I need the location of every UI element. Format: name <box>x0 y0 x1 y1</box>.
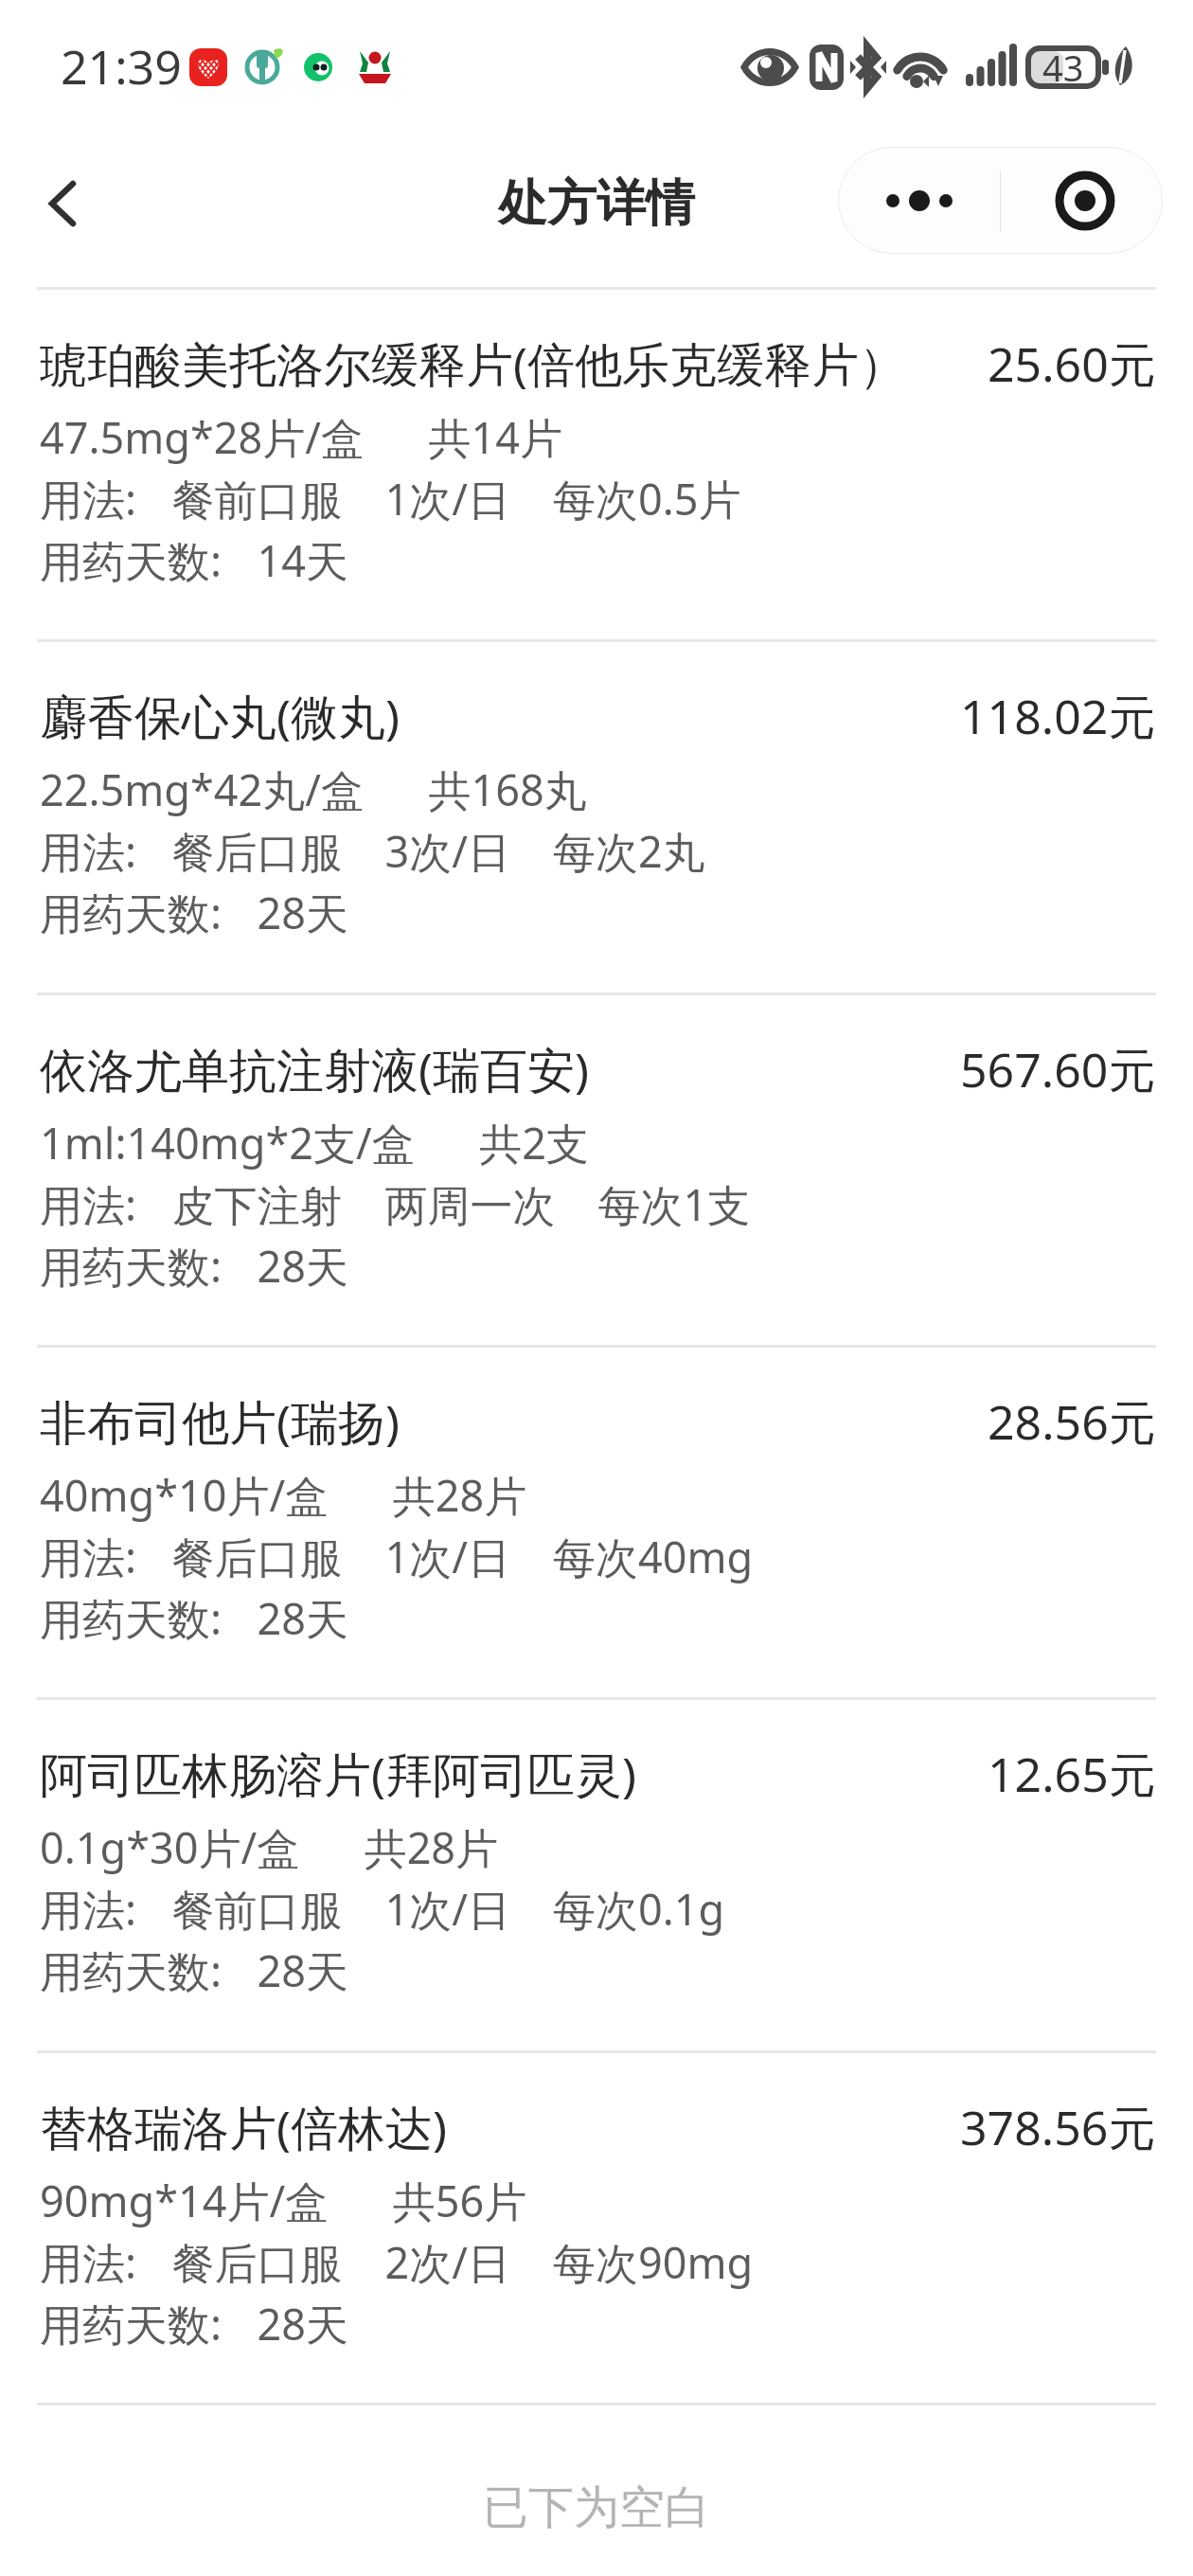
staticText: 用法: 皮下注射 两周一次 每次1支 <box>40 1175 751 1233</box>
staticText: 用药天数: 28天 <box>40 1237 349 1295</box>
staticText: 用药天数: 14天 <box>40 531 349 589</box>
staticText: 40mg*10片/盒 共28片 <box>40 1466 527 1524</box>
staticText: 麝香保心丸(微丸) <box>40 684 400 748</box>
staticText: 用法: 餐前口服 1次/日 每次0.1g <box>40 1880 725 1938</box>
staticText: 90mg*14片/盒 共56片 <box>40 2172 527 2229</box>
button[interactable]: Close <box>1001 147 1163 254</box>
staticText: 已下为空白 <box>483 2479 710 2536</box>
staticText: 用法: 餐后口服 3次/日 每次2丸 <box>40 822 705 880</box>
staticText: 25.60元 <box>988 331 1156 396</box>
staticText: 阿司匹林肠溶片(拜阿司匹灵) <box>40 1742 636 1806</box>
staticText: 处方详情 <box>498 172 695 235</box>
button[interactable]: 非布司他片(瑞扬) <box>0 1348 1193 1697</box>
staticText: 22.5mg*42丸/盒 共168丸 <box>40 760 587 818</box>
staticText: 用药天数: 28天 <box>40 2295 349 2352</box>
staticText: 用药天数: 28天 <box>40 1941 349 1999</box>
staticText: 0.1g*30片/盒 共28片 <box>40 1818 499 1876</box>
staticText: 非布司他片(瑞扬) <box>40 1389 400 1454</box>
staticText: 依洛尤单抗注射液(瑞百安) <box>40 1037 589 1101</box>
button[interactable]: 琥珀酸美托洛尔缓释片(倍他乐克缓释片） <box>0 290 1193 639</box>
staticText: 118.02元 <box>960 684 1156 748</box>
button[interactable]: 替格瑞洛片(倍林达) <box>0 2053 1193 2403</box>
button[interactable]: 阿司匹林肠溶片(拜阿司匹灵) <box>0 1700 1193 2049</box>
staticText: 12.65元 <box>988 1742 1156 1806</box>
button[interactable]: 麝香保心丸(微丸) <box>0 642 1193 992</box>
staticText: 378.56元 <box>960 2095 1156 2159</box>
staticText: 21:39 <box>61 34 182 98</box>
staticText: 1ml:140mg*2支/盒 共2支 <box>40 1114 589 1172</box>
staticText: 用法: 餐后口服 2次/日 每次90mg <box>40 2233 754 2291</box>
staticText: 用药天数: 28天 <box>40 1589 349 1647</box>
staticText: 琥珀酸美托洛尔缓释片(倍他乐克缓释片） <box>40 331 906 396</box>
button[interactable]: More options <box>838 147 1000 254</box>
staticText: 47.5mg*28片/盒 共14片 <box>40 408 562 466</box>
button[interactable]: 依洛尤单抗注射液(瑞百安) <box>0 995 1193 1345</box>
staticText: 567.60元 <box>960 1037 1156 1101</box>
staticText: 28.56元 <box>988 1389 1156 1454</box>
staticText: 43 <box>1042 43 1084 92</box>
button[interactable]: Back <box>11 150 116 254</box>
staticText: 用法: 餐后口服 1次/日 每次40mg <box>40 1528 754 1585</box>
staticText: 替格瑞洛片(倍林达) <box>40 2095 447 2159</box>
staticText: 用药天数: 28天 <box>40 884 349 941</box>
staticText: 用法: 餐前口服 1次/日 每次0.5片 <box>40 470 741 528</box>
